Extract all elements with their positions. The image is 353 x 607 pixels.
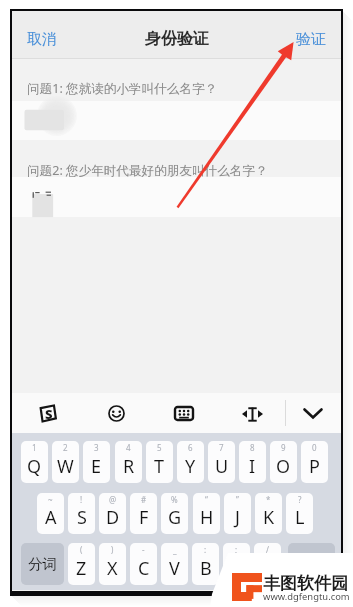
button[interactable]: 2: [52, 441, 79, 483]
staticText: Y: [185, 454, 196, 479]
staticText: P: [309, 454, 320, 479]
staticText: N: [230, 556, 244, 581]
button[interactable]: Emoji: [93, 393, 139, 434]
button[interactable]: (: [68, 543, 95, 585]
staticText: _: [173, 544, 177, 555]
staticText: D: [106, 505, 120, 530]
button[interactable]: /: [254, 543, 281, 585]
button[interactable]: Move cursor: [229, 393, 275, 434]
button[interactable]: 0: [301, 441, 328, 483]
staticText: B: [200, 556, 212, 581]
staticText: V: [169, 556, 180, 581]
staticText: E: [91, 454, 102, 479]
button[interactable]: 1: [21, 441, 48, 483]
button[interactable]: 验证: [282, 20, 341, 59]
button[interactable]: *: [255, 493, 282, 534]
staticText: 6: [188, 442, 193, 453]
staticText: U: [215, 454, 229, 479]
staticText: X: [107, 556, 118, 581]
staticText: 8: [250, 442, 255, 453]
staticText: 取消: [27, 30, 57, 49]
button[interactable]: 9: [270, 441, 297, 483]
staticText: 0: [312, 442, 317, 453]
staticText: ”: [236, 494, 239, 505]
staticText: S: [45, 405, 53, 423]
staticText: I: [249, 454, 256, 479]
staticText: ~: [48, 494, 53, 505]
button[interactable]: !: [68, 493, 95, 534]
button[interactable]: -: [130, 543, 157, 585]
button[interactable]: :: [192, 543, 219, 585]
staticText: 4: [126, 442, 131, 453]
staticText: #: [141, 494, 147, 505]
button[interactable]: 3: [83, 441, 110, 483]
button[interactable]: @: [99, 493, 126, 534]
button[interactable]: ;: [223, 543, 250, 585]
staticText: W: [57, 454, 74, 479]
staticText: 丰图软件园: [263, 573, 348, 594]
button[interactable]: #: [130, 493, 157, 534]
button[interactable]: %: [161, 493, 188, 534]
button[interactable]: 取消: [12, 20, 71, 59]
button[interactable]: Hide keyboard: [290, 393, 336, 434]
staticText: “: [205, 494, 208, 505]
button[interactable]: 8: [239, 441, 266, 483]
staticText: ;: [235, 544, 238, 555]
button[interactable]: “: [193, 493, 220, 534]
staticText: @: [109, 494, 117, 505]
staticText: Q: [27, 454, 42, 479]
staticText: 问题1: 您就读的小学叫什么名字？: [27, 80, 218, 97]
button[interactable]: Keyboard layout: [161, 393, 207, 434]
staticText: K: [263, 505, 275, 530]
button[interactable]: 分词: [21, 543, 64, 585]
button[interactable]: 5: [146, 441, 173, 483]
staticText: S: [77, 505, 87, 530]
staticText: ?: [298, 494, 302, 505]
staticText: G: [168, 505, 182, 530]
button[interactable]: 6: [177, 441, 204, 483]
staticText: O: [276, 454, 291, 479]
staticText: :: [204, 544, 207, 555]
staticText: !: [80, 494, 83, 505]
staticText: 3: [94, 442, 99, 453]
staticText: 5: [157, 442, 162, 453]
staticText: A: [45, 505, 57, 530]
button[interactable]: ): [99, 543, 126, 585]
button[interactable]: 4: [115, 441, 142, 483]
staticText: 7: [219, 442, 224, 453]
staticText: L: [295, 505, 305, 530]
staticText: /: [266, 544, 269, 555]
staticText: R: [123, 454, 135, 479]
button[interactable]: ”: [224, 493, 251, 534]
staticText: J: [235, 505, 240, 530]
staticText: 分词: [28, 555, 57, 573]
staticText: 2: [63, 442, 68, 453]
button[interactable]: ~: [37, 493, 64, 534]
staticText: C: [138, 556, 150, 581]
button[interactable]: ?: [286, 493, 313, 534]
staticText: (: [80, 544, 83, 555]
staticText: Z: [76, 556, 87, 581]
button[interactable]: [288, 543, 335, 585]
button[interactable]: 7: [208, 441, 235, 483]
staticText: 9: [281, 442, 286, 453]
staticText: *: [266, 494, 271, 505]
staticText: -: [142, 544, 145, 555]
staticText: M: [259, 556, 276, 581]
button[interactable]: _: [161, 543, 188, 585]
staticText: %: [171, 494, 178, 505]
staticText: 1: [32, 442, 37, 453]
staticText: ): [111, 544, 114, 555]
staticText: H: [200, 505, 214, 530]
staticText: T: [154, 454, 165, 479]
button[interactable]: Sogou input: [24, 393, 70, 434]
staticText: www.dgfengtu.com: [263, 590, 350, 603]
staticText: 验证: [296, 30, 326, 49]
staticText: F: [139, 505, 149, 530]
staticText: 问题2: 您少年时代最好的朋友叫什么名字？: [27, 162, 268, 179]
staticText: 身份验证: [145, 29, 209, 49]
